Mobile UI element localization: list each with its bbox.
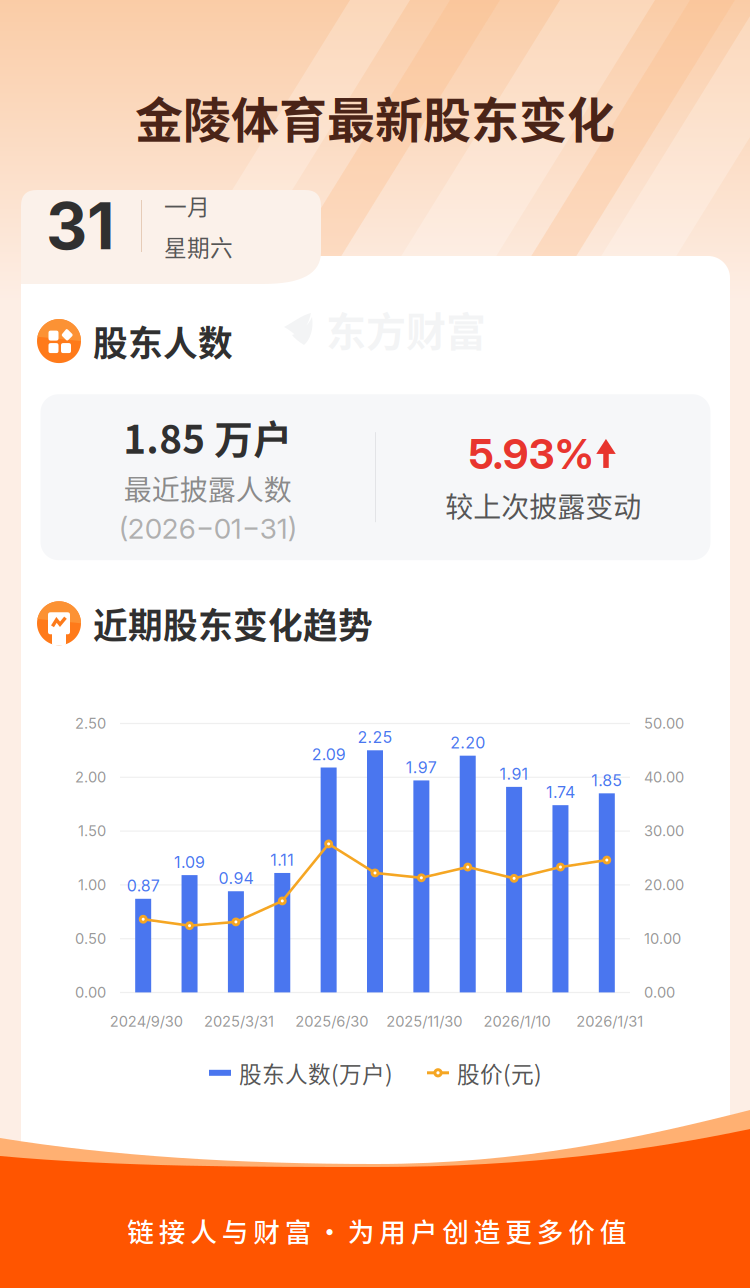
staticText: 东方财富 — [326, 300, 486, 358]
staticText: 较上次披露变动 — [445, 485, 641, 525]
staticText: 20.00 — [644, 876, 684, 894]
staticText: 0.94 — [218, 869, 253, 888]
staticText: 2.50 — [75, 714, 106, 732]
staticText: 一月 — [164, 189, 210, 222]
staticText: 31 — [46, 187, 115, 265]
staticText: 2025/11/30 — [386, 1012, 462, 1030]
staticText: 0.00 — [644, 983, 675, 1001]
staticText: 链接人与财富·为用户创造更多价值 — [127, 1211, 627, 1250]
staticText: 1.97 — [406, 758, 437, 777]
staticText: 1.09 — [174, 852, 205, 872]
staticText: 0.00 — [75, 983, 106, 1001]
staticText: 星期六 — [164, 230, 233, 263]
staticText: 2.20 — [450, 733, 485, 752]
staticText: 金陵体育最新股东变化 — [135, 82, 615, 151]
staticText: 5.93% — [469, 429, 594, 479]
staticText: 股东人数(万户) — [239, 1056, 393, 1089]
staticText: 40.00 — [644, 768, 684, 786]
staticText: 最近披露人数 — [124, 468, 292, 508]
staticText: 1.85 万户 — [123, 409, 292, 465]
staticText: 50.00 — [644, 714, 684, 732]
staticText: 2024/9/30 — [110, 1012, 183, 1030]
staticText: 2025/6/30 — [295, 1012, 368, 1030]
staticText: 股价(元) — [457, 1056, 542, 1089]
staticText: 1.00 — [78, 876, 106, 894]
staticText: 1.85 — [591, 771, 622, 790]
staticText: 2.00 — [75, 768, 106, 786]
staticText: 1.11 — [270, 850, 294, 870]
staticText: 1.50 — [78, 822, 106, 840]
staticText: (2026−01−31) — [119, 511, 297, 545]
staticText: 股东人数 — [93, 316, 233, 366]
staticText: 2.09 — [312, 745, 346, 764]
staticText: 2025/3/31 — [204, 1012, 274, 1030]
staticText: 2026/1/31 — [576, 1012, 643, 1030]
staticText: 近期股东变化趋势 — [93, 598, 373, 648]
staticText: 2026/1/10 — [484, 1012, 551, 1030]
staticText: 0.50 — [75, 930, 106, 947]
staticText: 1.74 — [546, 782, 575, 802]
staticText: 2.25 — [357, 728, 392, 747]
staticText: 10.00 — [644, 930, 681, 947]
staticText: 0.87 — [127, 876, 160, 895]
staticText: 30.00 — [644, 822, 684, 840]
staticText: 1.91 — [500, 764, 529, 784]
